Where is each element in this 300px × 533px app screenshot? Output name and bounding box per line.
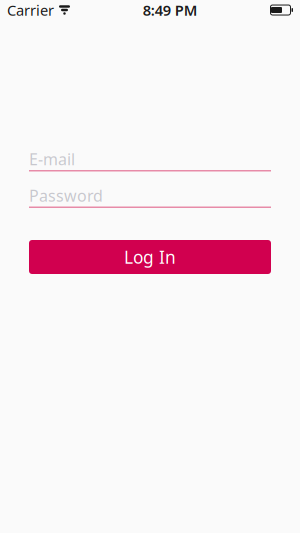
button[interactable]: Log In xyxy=(29,240,271,274)
staticText: E-mail xyxy=(29,148,75,170)
staticText: Carrier xyxy=(7,0,54,20)
button[interactable]: E-mail xyxy=(29,148,271,171)
staticText: Password xyxy=(29,185,103,206)
staticText: Log In xyxy=(124,245,176,268)
button[interactable]: Password xyxy=(29,184,271,208)
staticText: 8:49 PM xyxy=(143,0,198,20)
